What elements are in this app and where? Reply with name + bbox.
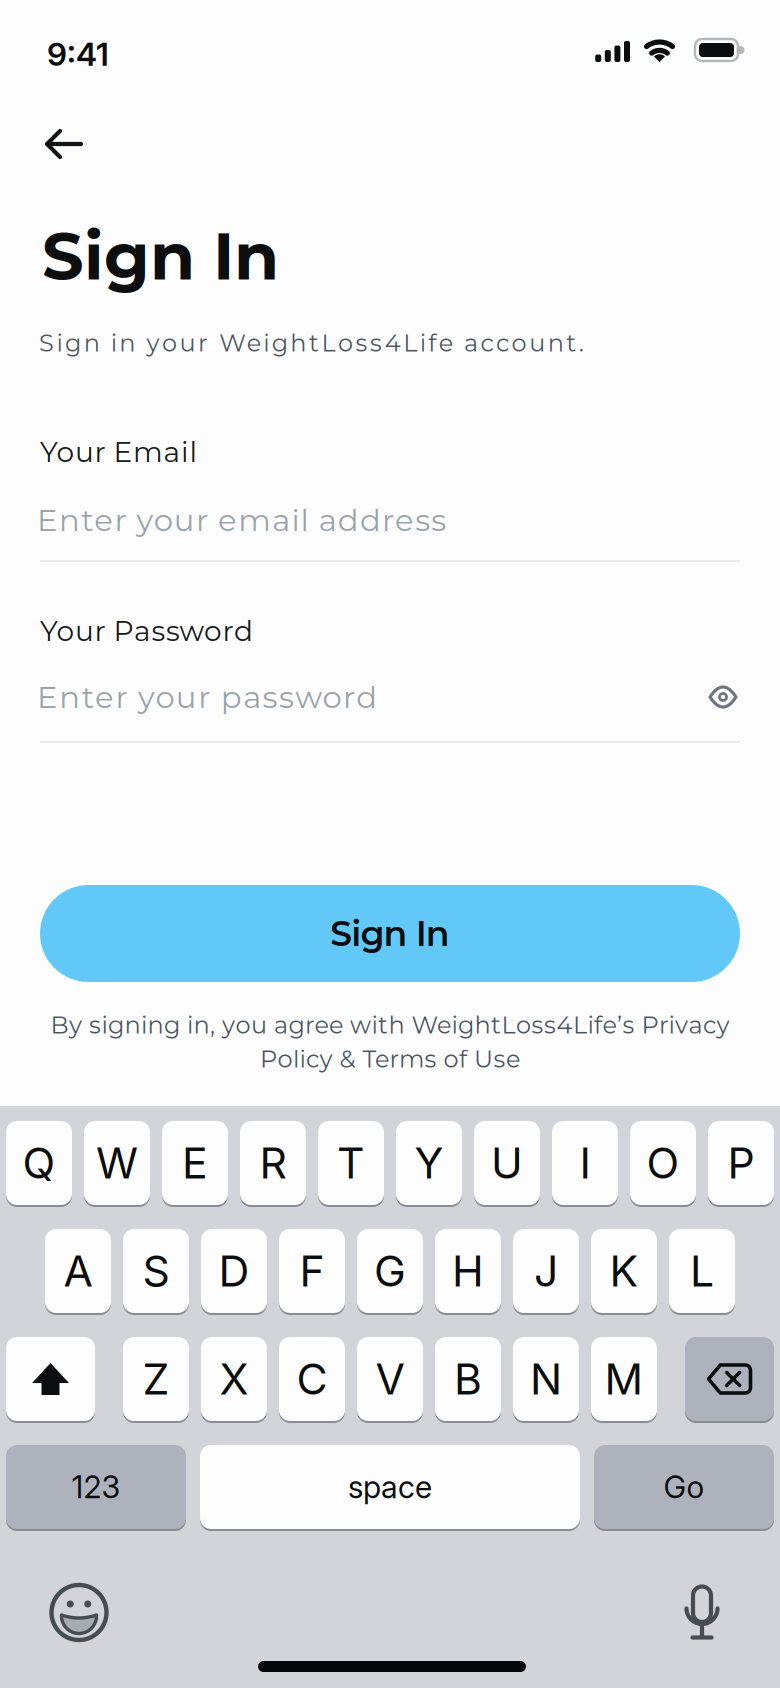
staticText: M	[604, 1353, 643, 1405]
button[interactable]: T	[318, 1121, 384, 1205]
button[interactable]: Delete	[685, 1337, 774, 1421]
staticText: D	[218, 1245, 249, 1297]
staticText: L	[690, 1245, 714, 1297]
staticText: Policy & Terms of Use	[260, 1044, 520, 1074]
staticText: U	[491, 1137, 523, 1189]
button[interactable]: L	[669, 1229, 735, 1313]
staticText: X	[219, 1353, 248, 1405]
button[interactable]: M	[591, 1337, 657, 1421]
button[interactable]: space	[200, 1445, 580, 1529]
staticText: P	[727, 1137, 754, 1189]
button[interactable]: Enter your password	[37, 676, 703, 718]
button[interactable]: J	[513, 1229, 579, 1313]
staticText: 123	[71, 1468, 120, 1505]
staticText: By signing in, you agree with WeightLoss…	[50, 1010, 729, 1040]
staticText: N	[530, 1353, 562, 1405]
button[interactable]: Y	[396, 1121, 462, 1205]
staticText: K	[609, 1245, 638, 1297]
button[interactable]: 123	[6, 1445, 186, 1529]
button[interactable]: X	[201, 1337, 267, 1421]
button[interactable]: Z	[123, 1337, 189, 1421]
staticText: Enter your email address	[37, 501, 446, 539]
staticText: R	[259, 1137, 286, 1189]
staticText: space	[348, 1468, 432, 1505]
button[interactable]: D	[201, 1229, 267, 1313]
button[interactable]: G	[357, 1229, 423, 1313]
button[interactable]: Dictation	[684, 1584, 720, 1640]
staticText: 9:41	[47, 35, 109, 73]
staticText: Y	[414, 1137, 443, 1189]
button[interactable]: O	[630, 1121, 696, 1205]
button[interactable]: Enter your email address	[0, 499, 780, 562]
staticText: H	[452, 1245, 484, 1297]
button[interactable]: S	[123, 1229, 189, 1313]
staticText: Sign In	[42, 216, 279, 296]
staticText: Your Password	[40, 614, 253, 648]
button[interactable]: Shift	[6, 1337, 95, 1421]
button[interactable]: R	[240, 1121, 306, 1205]
button[interactable]: Show password	[703, 676, 743, 718]
staticText: Enter your password	[37, 678, 377, 716]
staticText: V	[375, 1353, 404, 1405]
staticText: E	[182, 1137, 208, 1189]
staticText: F	[299, 1245, 324, 1297]
button[interactable]: N	[513, 1337, 579, 1421]
staticText: W	[96, 1137, 138, 1189]
staticText: G	[374, 1245, 406, 1297]
button[interactable]: A	[45, 1229, 111, 1313]
button[interactable]: B	[435, 1337, 501, 1421]
staticText: Sign in your WeightLoss4Life account.	[39, 328, 584, 358]
staticText: Q	[22, 1137, 55, 1189]
button[interactable]: F	[279, 1229, 345, 1313]
staticText: J	[534, 1245, 558, 1297]
button[interactable]: W	[84, 1121, 150, 1205]
staticText: A	[63, 1245, 92, 1297]
button[interactable]: Back	[45, 130, 82, 158]
button[interactable]: H	[435, 1229, 501, 1313]
button[interactable]: K	[591, 1229, 657, 1313]
button[interactable]: Q	[6, 1121, 72, 1205]
staticText: S	[142, 1245, 169, 1297]
button[interactable]: C	[279, 1337, 345, 1421]
staticText: O	[646, 1137, 679, 1189]
button[interactable]: V	[357, 1337, 423, 1421]
button[interactable]: E	[162, 1121, 228, 1205]
button[interactable]: P	[708, 1121, 774, 1205]
button[interactable]: I	[552, 1121, 618, 1205]
staticText: Go	[663, 1468, 704, 1505]
button[interactable]: Emoji	[51, 1584, 107, 1640]
button[interactable]: Go	[594, 1445, 774, 1529]
staticText: T	[337, 1137, 365, 1189]
staticText: B	[454, 1353, 482, 1405]
staticText: C	[296, 1353, 327, 1405]
button[interactable]: U	[474, 1121, 540, 1205]
staticText: Z	[142, 1353, 169, 1405]
staticText: Sign In	[330, 912, 450, 955]
staticText: Your Email	[40, 435, 197, 469]
staticText: I	[579, 1137, 590, 1189]
button[interactable]: Sign In	[0, 885, 780, 982]
